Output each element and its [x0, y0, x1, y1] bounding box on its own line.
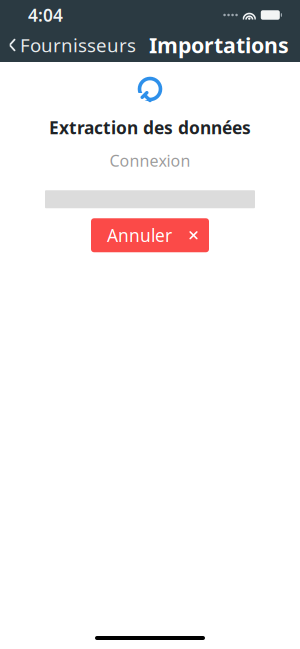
staticText: 4:04: [28, 3, 63, 26]
staticText: Fournisseurs: [20, 33, 136, 57]
button[interactable]: Annuler: [91, 218, 209, 252]
staticText: Extraction des données: [49, 116, 251, 139]
staticText: Annuler: [107, 224, 172, 247]
staticText: Connexion: [109, 150, 190, 171]
staticText: Importations: [149, 31, 289, 59]
button[interactable]: Fournisseurs: [0, 30, 142, 60]
